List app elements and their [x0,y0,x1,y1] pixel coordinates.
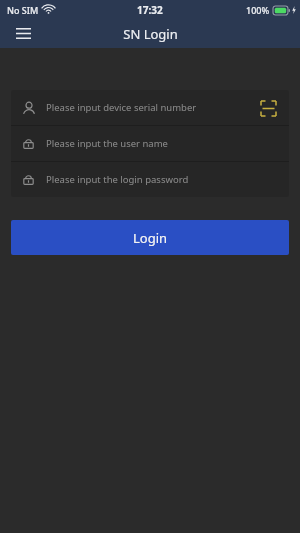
staticText: No SIM [7,4,39,16]
staticText: Please input the user name [46,137,281,150]
staticText: Please input the login password [46,173,281,186]
staticText: SN Login [123,25,178,43]
staticText: Please input device serial number [46,101,255,114]
button[interactable]: Please input the login password [11,162,289,197]
staticText: Login [133,229,168,247]
button[interactable]: Scan QR code [255,95,281,121]
staticText: 100% [246,4,270,16]
staticText: 17:32 [137,3,163,17]
button[interactable]: Open navigation menu [8,19,38,48]
button[interactable]: Please input device serial number [11,90,289,125]
button[interactable]: Please input the user name [11,126,289,161]
button[interactable]: Login [11,220,289,255]
